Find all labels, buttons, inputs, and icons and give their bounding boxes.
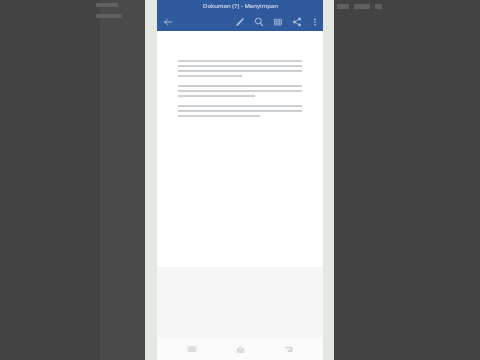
button[interactable]: Back: [275, 338, 301, 360]
button[interactable]: [157, 31, 323, 267]
button[interactable]: Recents: [179, 338, 205, 360]
button[interactable]: Search: [249, 12, 268, 31]
button[interactable]: Edit: [230, 12, 249, 31]
staticText: Dokumen (7) - Menyimpan: [203, 2, 278, 10]
button[interactable]: Keyboard: [268, 12, 287, 31]
button[interactable]: More options: [306, 12, 323, 31]
button[interactable]: Back: [157, 12, 179, 31]
button[interactable]: Home: [227, 338, 253, 360]
button[interactable]: Share: [287, 12, 306, 31]
